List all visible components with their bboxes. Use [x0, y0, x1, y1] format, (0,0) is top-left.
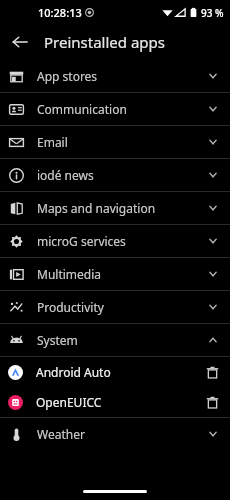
staticText: App stores: [37, 68, 98, 84]
staticText: Weather: [37, 426, 85, 442]
staticText: Productivity: [37, 299, 104, 315]
button[interactable]: Uninstall OpenEUICC: [199, 389, 225, 415]
staticText: Preinstalled apps: [44, 32, 165, 52]
button[interactable]: Communication: [0, 93, 230, 125]
staticText: 93 %: [201, 6, 224, 20]
button[interactable]: Multimedia: [0, 258, 230, 290]
staticText: System: [37, 332, 78, 348]
staticText: Multimedia: [37, 266, 102, 282]
staticText: Communication: [37, 101, 127, 117]
staticText: 10:28:13: [38, 5, 82, 20]
staticText: Android Auto: [36, 364, 111, 380]
button[interactable]: Email: [0, 126, 230, 158]
button[interactable]: Weather: [0, 418, 230, 450]
staticText: iodé news: [37, 167, 94, 183]
button[interactable]: Android Auto: [0, 357, 230, 387]
staticText: Maps and navigation: [37, 200, 156, 216]
button[interactable]: OpenEUICC: [0, 387, 230, 417]
button[interactable]: System: [0, 324, 230, 356]
button[interactable]: App stores: [0, 60, 230, 92]
button[interactable]: Uninstall Android Auto: [199, 359, 225, 385]
staticText: microG services: [37, 233, 126, 249]
button[interactable]: Maps and navigation: [0, 192, 230, 224]
button[interactable]: Productivity: [0, 291, 230, 323]
staticText: OpenEUICC: [36, 394, 102, 410]
button[interactable]: microG services: [0, 225, 230, 257]
button[interactable]: Back: [4, 26, 36, 58]
button[interactable]: iodé news: [0, 159, 230, 191]
staticText: Email: [37, 134, 68, 150]
